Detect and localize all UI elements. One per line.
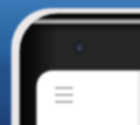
button[interactable]: Open navigation menu: [0, 0, 140, 125]
